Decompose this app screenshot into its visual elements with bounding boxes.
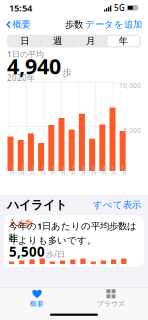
button[interactable]: 日 [8, 36, 41, 46]
staticText: 2020年 [7, 73, 35, 83]
staticText: 5,500 [9, 243, 45, 260]
staticText: 2 [21, 164, 24, 172]
staticText: 概要 [30, 300, 44, 308]
button[interactable]: データを追加 [81, 16, 146, 33]
button[interactable]: 概要 [0, 287, 74, 309]
staticText: データを追加 [85, 19, 142, 30]
staticText: 8 [82, 164, 85, 172]
staticText: 歩 [62, 67, 71, 78]
staticText: 5G [114, 3, 125, 13]
button[interactable]: すべて表示 [93, 199, 141, 211]
staticText: 12 [121, 164, 127, 172]
staticText: 9 [92, 164, 95, 172]
staticText: 月 [122, 170, 127, 176]
button[interactable]: 年 [107, 36, 139, 46]
button[interactable]: 週 [41, 36, 74, 46]
staticText: 月 [40, 170, 45, 176]
staticText: 歩数 [65, 19, 83, 30]
staticText: 10,000 [119, 81, 141, 90]
staticText: ブラウズ [97, 300, 125, 308]
staticText: 月 [30, 170, 35, 176]
staticText: 4,940 [7, 52, 61, 80]
staticText: 月 [71, 170, 76, 176]
staticText: 10 [101, 164, 107, 172]
staticText: 月 [81, 170, 86, 176]
staticText: 月 [86, 35, 95, 47]
button[interactable]: 歩数 [4, 215, 144, 267]
staticText: 3 [31, 164, 34, 172]
staticText: 15:54 [9, 2, 32, 14]
staticText: 月 [20, 170, 25, 176]
staticText: 月 [91, 170, 96, 176]
button[interactable]: 概要 [2, 16, 33, 33]
button[interactable]: 月 [74, 36, 107, 46]
button[interactable]: ブラウズ [74, 287, 148, 309]
staticText: 歩数 [17, 218, 33, 228]
staticText: 年よりも多いです。 [9, 235, 96, 246]
staticText: 月 [50, 170, 55, 176]
staticText: 月 [61, 170, 66, 176]
staticText: 4 [41, 164, 44, 172]
staticText: ハイライト [7, 198, 67, 212]
staticText: 5,000 [123, 126, 141, 135]
staticText: 月 [101, 170, 106, 176]
staticText: 11 [111, 164, 117, 172]
staticText: 日 [20, 35, 29, 47]
staticText: 1日の平均 [7, 49, 44, 59]
staticText: 月 [10, 170, 15, 176]
staticText: 歩/日 [46, 249, 65, 259]
staticText: 6 [62, 164, 65, 172]
staticText: 1 [11, 164, 14, 172]
staticText: 今年の1日あたりの平均歩数は昨 [9, 220, 137, 243]
staticText: 年 [119, 35, 128, 47]
staticText: すべて表示 [93, 199, 141, 211]
staticText: 月 [112, 170, 117, 176]
staticText: 概要 [12, 19, 30, 30]
staticText: 5 [51, 164, 54, 172]
staticText: 7 [72, 164, 75, 172]
staticText: 週 [53, 35, 62, 47]
